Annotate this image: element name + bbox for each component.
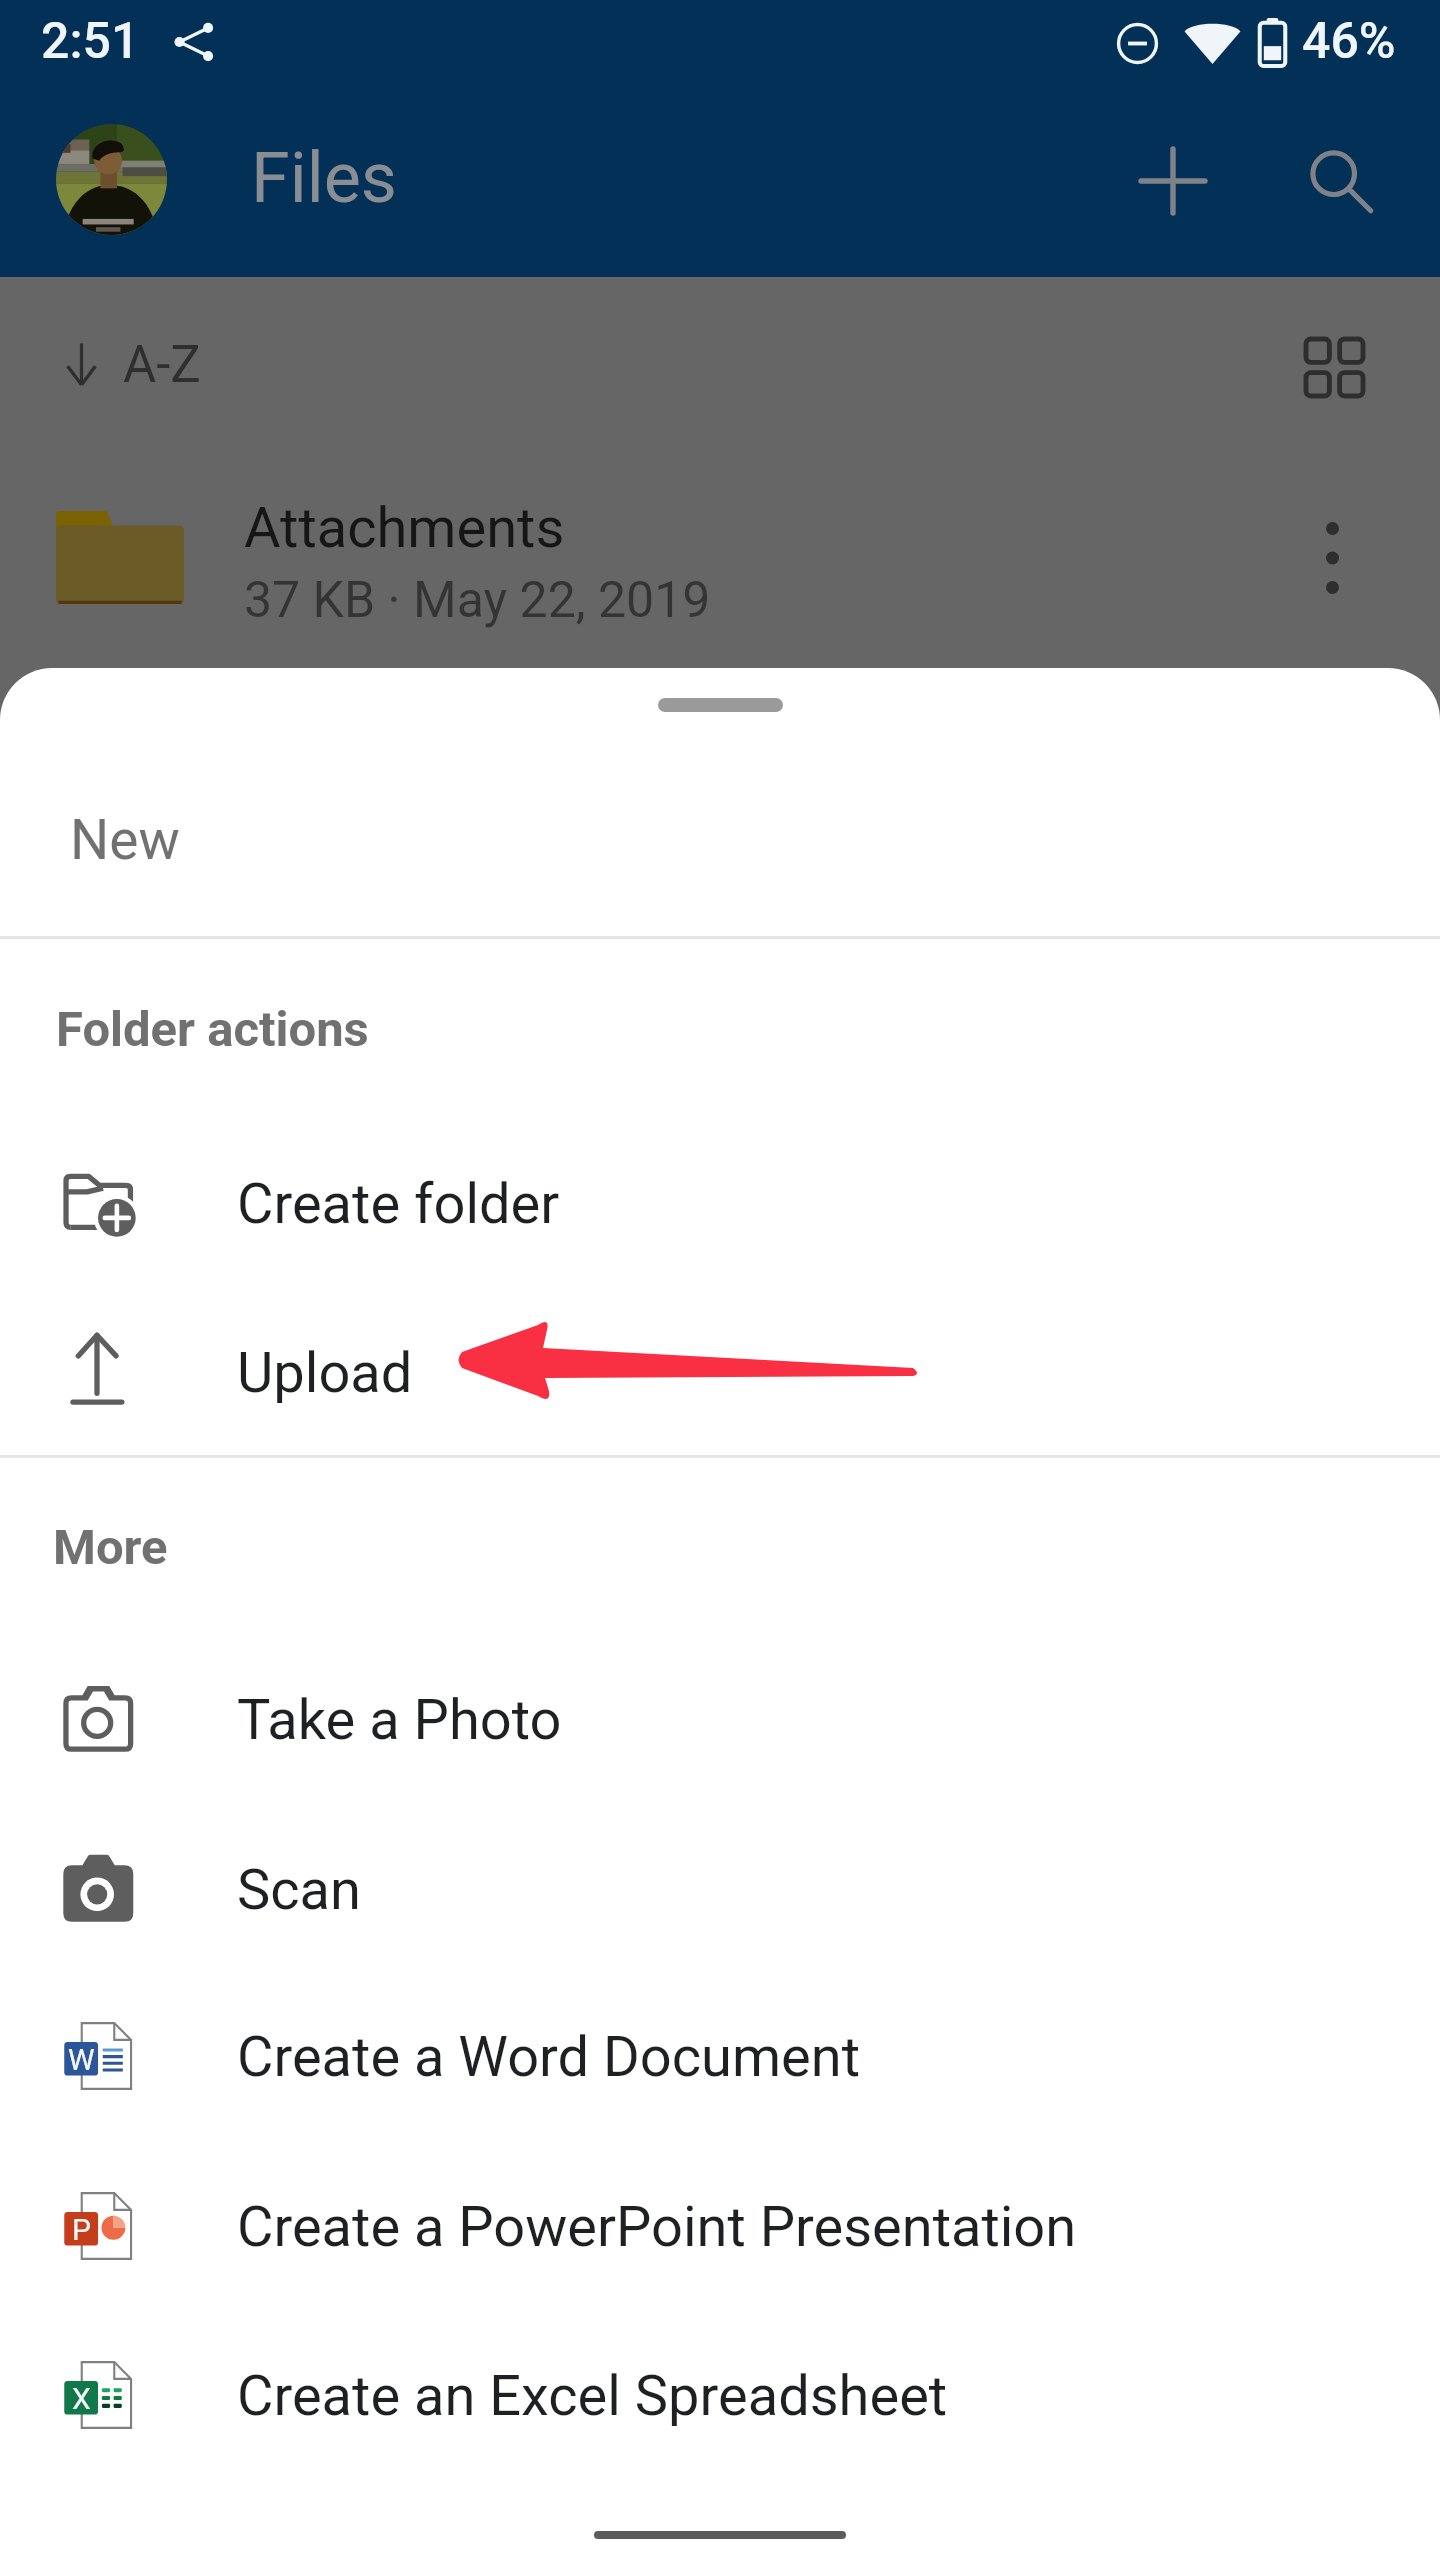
staticText: A-Z [123,335,201,395]
button[interactable]: Search [1281,121,1401,241]
staticText: New [70,808,180,872]
staticText: 37 KB · May 22, 2019 [244,571,711,630]
button[interactable]: Upload [0,1298,1440,1448]
staticText: Create folder [237,1171,560,1237]
staticText: W [68,2042,95,2076]
staticText: 46% [1302,12,1396,71]
staticText: More [53,1519,168,1576]
button[interactable]: W [0,1982,1440,2132]
staticText: P [72,2212,91,2246]
staticText: Create a PowerPoint Presentation [237,2194,1077,2260]
button[interactable]: More options [1272,498,1392,618]
staticText: Create an Excel Spreadsheet [237,2363,948,2429]
button[interactable]: Take a Photo [0,1645,1440,1795]
staticText: Take a Photo [237,1687,562,1753]
staticText: Attachments [244,495,565,561]
staticText: Upload [237,1340,413,1406]
button[interactable]: P [0,2152,1440,2302]
button[interactable]: X [0,2321,1440,2471]
button[interactable]: Attachments [0,461,1440,691]
staticText: X [72,2381,91,2415]
button[interactable]: Switch to grid view [1275,301,1395,421]
button[interactable]: Dismiss sheet [0,668,1440,748]
staticText: Files [251,137,397,219]
button[interactable]: Account [56,124,167,235]
staticText: 2:51 [41,12,140,71]
button[interactable]: Scan [0,1815,1440,1965]
button[interactable]: Add [1113,121,1233,241]
staticText: Scan [237,1857,361,1923]
staticText: Folder actions [56,1001,369,1058]
button[interactable]: Create folder [0,1129,1440,1279]
button[interactable]: A-Z [42,314,201,414]
staticText: Create a Word Document [237,2024,860,2090]
